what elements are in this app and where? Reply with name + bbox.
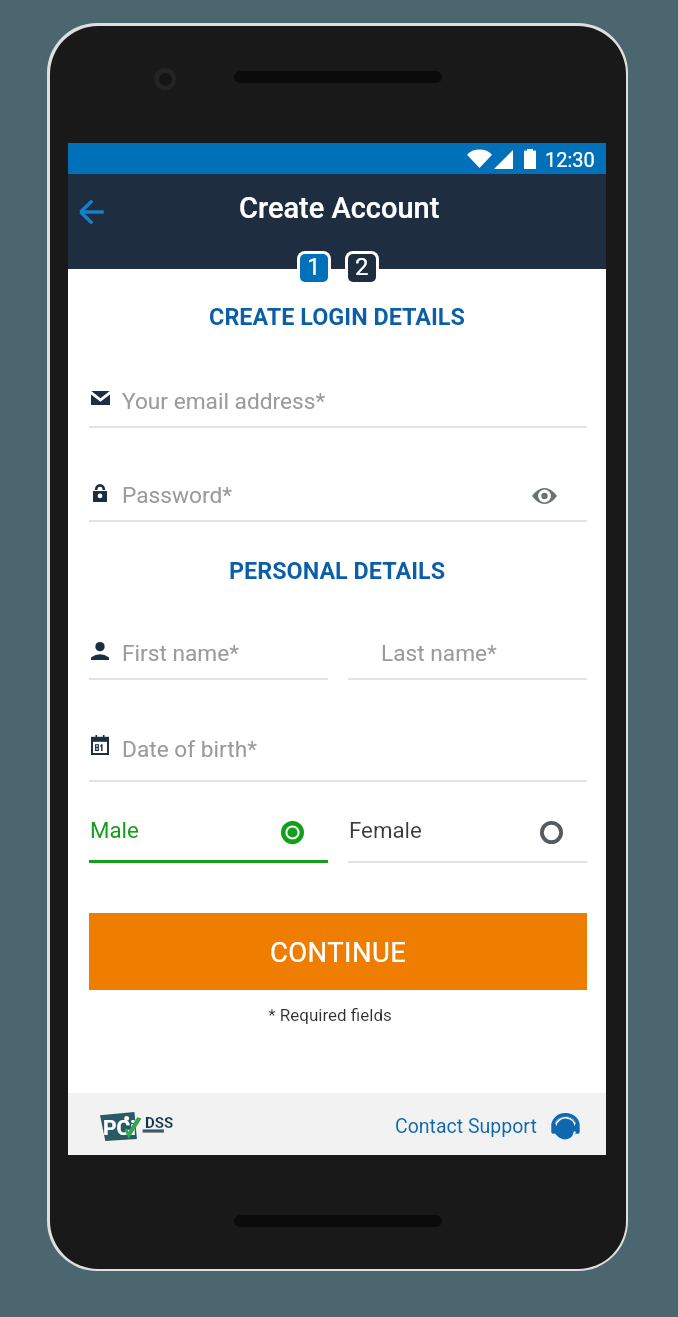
button[interactable]: Female <box>348 823 587 863</box>
staticText: Male <box>90 817 139 843</box>
button[interactable]: Contact Support <box>395 1111 580 1145</box>
button[interactable]: 2 <box>348 254 376 282</box>
staticText: 1 <box>307 254 321 281</box>
staticText: CREATE LOGIN DETAILS <box>68 303 606 330</box>
staticText: DSS <box>145 1114 174 1132</box>
staticText: PERSONAL DETAILS <box>68 557 606 584</box>
button[interactable]: 1 <box>300 254 328 282</box>
button[interactable]: Your email address* <box>89 388 587 428</box>
staticText: Your email address* <box>122 388 326 415</box>
button[interactable]: First name* <box>89 640 328 680</box>
staticText: Create Account <box>239 191 440 225</box>
staticText: CONTINUE <box>270 936 407 968</box>
button[interactable]: Male <box>89 823 328 863</box>
staticText: Date of birth* <box>122 736 257 763</box>
staticText: Password* <box>122 482 232 509</box>
staticText: * Required fields <box>81 1005 579 1025</box>
button[interactable]: Date of birth* <box>89 742 587 782</box>
staticText: 2 <box>355 254 369 281</box>
staticText: First name* <box>122 640 240 667</box>
staticText: PCi <box>103 1116 136 1141</box>
staticText: 12:30 <box>545 148 595 171</box>
button[interactable]: Last name* <box>348 640 587 680</box>
button[interactable]: CONTINUE <box>89 913 587 990</box>
button[interactable]: Password* <box>89 482 587 522</box>
button[interactable]: Back <box>62 183 120 241</box>
staticText: Contact Support <box>395 1115 537 1138</box>
staticText: Last name* <box>381 640 497 667</box>
staticText: Female <box>349 817 422 843</box>
